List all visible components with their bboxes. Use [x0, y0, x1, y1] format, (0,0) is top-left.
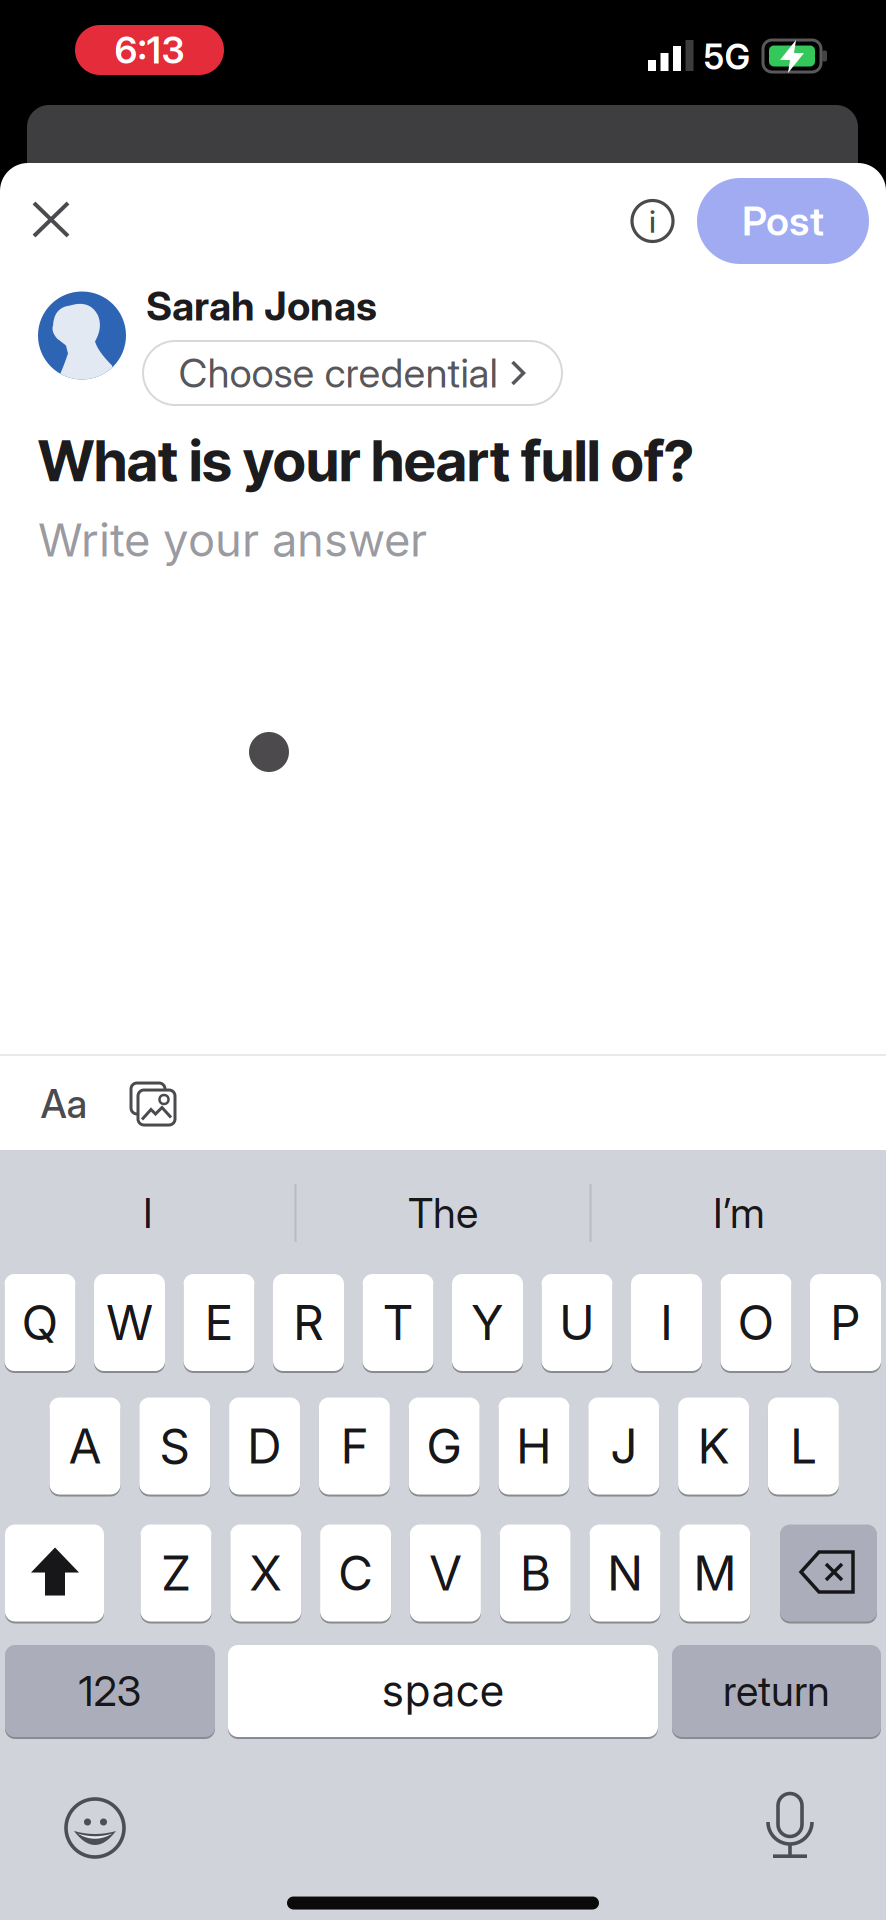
- staticText: The: [408, 1189, 478, 1237]
- staticText: i: [649, 205, 656, 239]
- button[interactable]: T: [362, 1273, 433, 1372]
- staticText: K: [698, 1418, 730, 1474]
- staticText: E: [204, 1294, 233, 1351]
- button[interactable]: [129, 1080, 177, 1128]
- button[interactable]: M: [679, 1523, 750, 1622]
- staticText: U: [559, 1294, 595, 1351]
- staticText: Choose credential: [178, 349, 497, 397]
- button[interactable]: O: [720, 1273, 791, 1372]
- staticText: N: [607, 1545, 643, 1601]
- staticText: O: [737, 1294, 774, 1351]
- button[interactable]: Aa: [29, 1076, 99, 1132]
- staticText: F: [340, 1418, 368, 1474]
- staticText: I: [660, 1294, 673, 1351]
- button[interactable]: K: [678, 1396, 749, 1495]
- staticText: A: [68, 1418, 101, 1474]
- button[interactable]: W: [94, 1273, 165, 1372]
- staticText: What is your heart full of?: [38, 427, 694, 495]
- staticText: C: [338, 1545, 373, 1601]
- button[interactable]: i: [623, 192, 681, 250]
- staticText: return: [723, 1667, 830, 1715]
- button[interactable]: [5, 1523, 104, 1622]
- staticText: L: [790, 1418, 817, 1474]
- staticText: 5G: [703, 37, 750, 77]
- button[interactable]: N: [589, 1523, 660, 1622]
- button[interactable]: L: [768, 1396, 839, 1495]
- staticText: S: [159, 1418, 190, 1474]
- staticText: W: [106, 1294, 153, 1351]
- button[interactable]: return: [672, 1644, 881, 1738]
- staticText: H: [516, 1418, 552, 1474]
- button[interactable]: U: [541, 1273, 612, 1372]
- button[interactable]: S: [139, 1396, 210, 1495]
- button[interactable]: [780, 1523, 877, 1622]
- button[interactable]: H: [498, 1396, 569, 1495]
- staticText: P: [830, 1294, 861, 1351]
- staticText: M: [693, 1545, 736, 1601]
- staticText: I: [143, 1189, 153, 1237]
- staticText: G: [426, 1418, 462, 1474]
- staticText: I’m: [713, 1189, 765, 1237]
- button[interactable]: J: [588, 1396, 659, 1495]
- staticText: Sarah Jonas: [146, 282, 377, 330]
- button[interactable]: B: [500, 1523, 571, 1622]
- button[interactable]: C: [320, 1523, 391, 1622]
- staticText: Q: [21, 1294, 58, 1351]
- staticText: R: [293, 1294, 324, 1351]
- button[interactable]: 123: [5, 1644, 215, 1738]
- button[interactable]: R: [273, 1273, 344, 1372]
- button[interactable]: Z: [140, 1523, 211, 1622]
- button[interactable]: [20, 189, 82, 251]
- staticText: space: [381, 1666, 504, 1716]
- staticText: J: [610, 1418, 637, 1474]
- button[interactable]: V: [410, 1523, 481, 1622]
- button[interactable]: I: [8, 1163, 288, 1263]
- staticText: D: [247, 1418, 282, 1474]
- button[interactable]: X: [230, 1523, 301, 1622]
- button[interactable]: Y: [452, 1273, 523, 1372]
- button[interactable]: [756, 1791, 824, 1859]
- staticText: Z: [161, 1545, 191, 1601]
- staticText: Write your answer: [38, 513, 427, 567]
- button[interactable]: A: [49, 1396, 120, 1495]
- button[interactable]: Q: [4, 1273, 75, 1372]
- staticText: T: [382, 1294, 413, 1351]
- button[interactable]: P: [810, 1273, 881, 1372]
- button[interactable]: F: [319, 1396, 390, 1495]
- button[interactable]: G: [409, 1396, 480, 1495]
- staticText: 6:13: [114, 28, 184, 72]
- staticText: 123: [78, 1667, 141, 1715]
- button[interactable]: I’m: [599, 1163, 879, 1263]
- button[interactable]: Choose credential: [143, 341, 562, 405]
- button[interactable]: I: [631, 1273, 702, 1372]
- staticText: V: [429, 1545, 462, 1601]
- staticText: Aa: [40, 1081, 87, 1127]
- button[interactable]: E: [183, 1273, 254, 1372]
- staticText: Y: [471, 1294, 504, 1351]
- button[interactable]: D: [229, 1396, 300, 1495]
- button[interactable]: 6:13: [75, 25, 224, 75]
- button[interactable]: space: [228, 1644, 658, 1738]
- staticText: B: [520, 1545, 551, 1601]
- button[interactable]: Post: [697, 178, 869, 264]
- staticText: X: [249, 1545, 282, 1601]
- button[interactable]: [64, 1797, 126, 1859]
- button[interactable]: The: [303, 1163, 583, 1263]
- staticText: Post: [742, 197, 824, 245]
